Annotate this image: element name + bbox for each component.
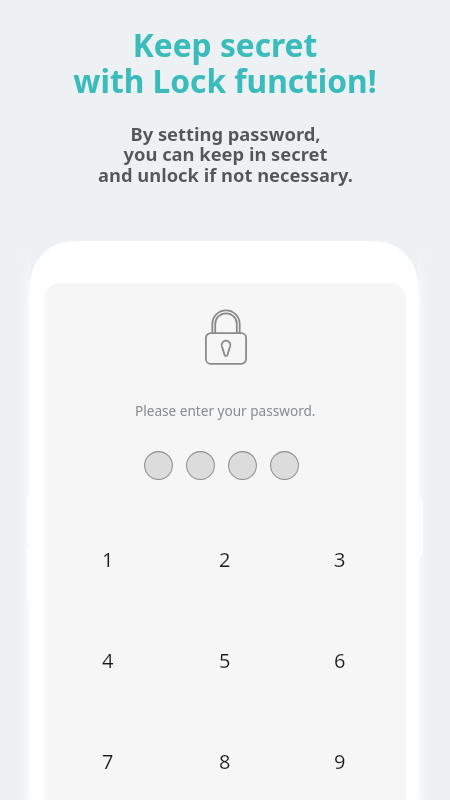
staticText: 6 xyxy=(334,647,346,674)
button[interactable]: 9 xyxy=(282,711,398,800)
button[interactable]: 3 xyxy=(282,509,398,609)
button[interactable]: 6 xyxy=(282,610,398,710)
button[interactable]: 4 xyxy=(50,610,166,710)
button[interactable]: 1 xyxy=(50,509,166,609)
staticText: Please enter your password. xyxy=(135,401,316,420)
staticText: 9 xyxy=(334,748,346,775)
button[interactable]: 2 xyxy=(167,509,283,609)
staticText: 4 xyxy=(102,647,114,674)
staticText: 1 xyxy=(102,546,114,573)
staticText: 7 xyxy=(102,748,114,775)
button[interactable]: 5 xyxy=(167,610,283,710)
staticText: Keep secret with Lock function! xyxy=(73,23,377,103)
staticText: 3 xyxy=(334,546,346,573)
staticText: 8 xyxy=(219,748,231,775)
staticText: 2 xyxy=(219,546,231,573)
staticText: 5 xyxy=(219,647,231,674)
staticText: By setting password, you can keep in sec… xyxy=(98,121,353,188)
button[interactable]: 8 xyxy=(167,711,283,800)
button[interactable]: 7 xyxy=(50,711,166,800)
